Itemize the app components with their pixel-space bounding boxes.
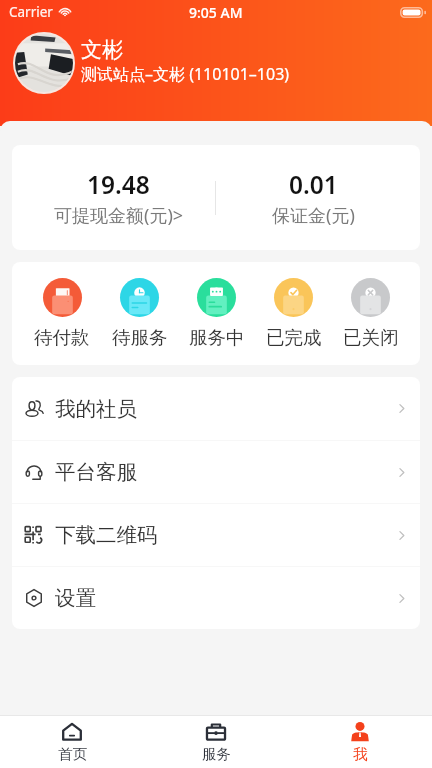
staticText: 下载二维码	[55, 522, 158, 548]
button[interactable]: 待付款	[23, 262, 101, 365]
staticText: 我的社员	[55, 396, 137, 422]
button[interactable]: 服务中	[178, 262, 255, 365]
staticText: 设置	[55, 585, 96, 611]
staticText: 我	[353, 745, 368, 763]
staticText: Carrier	[9, 3, 53, 21]
button[interactable]: 待服务	[101, 262, 178, 365]
staticText: 0.01	[289, 168, 338, 201]
staticText: 已关闭	[343, 326, 399, 349]
button[interactable]: 已关闭	[332, 262, 409, 365]
button[interactable]: 我的社员	[12, 377, 420, 440]
staticText: 9:05 AM	[189, 3, 243, 22]
button[interactable]: 已完成	[255, 262, 332, 365]
staticText: 19.48	[87, 168, 150, 201]
button[interactable]: 19.48	[22, 145, 215, 250]
staticText: 文彬	[81, 37, 123, 63]
staticText: 待付款	[34, 326, 90, 349]
staticText: 可提现金额(元)>	[54, 203, 184, 228]
staticText: 待服务	[112, 326, 168, 349]
staticText: 保证金(元)	[272, 203, 355, 228]
button[interactable]: 平台客服	[12, 441, 420, 503]
button[interactable]: 0.01	[216, 145, 410, 250]
button[interactable]: 首页	[0, 716, 144, 768]
staticText: 服务中	[189, 326, 245, 349]
staticText: 已完成	[266, 326, 322, 349]
staticText: 测试站点–文彬 (110101–103)	[81, 63, 290, 85]
staticText: 首页	[58, 745, 87, 763]
button[interactable]: 服务	[144, 716, 288, 768]
staticText: 平台客服	[55, 459, 137, 485]
button[interactable]: 下载二维码	[12, 504, 420, 566]
staticText: 服务	[202, 745, 231, 763]
button[interactable]: 设置	[12, 567, 420, 629]
button[interactable]: 我	[288, 716, 432, 768]
